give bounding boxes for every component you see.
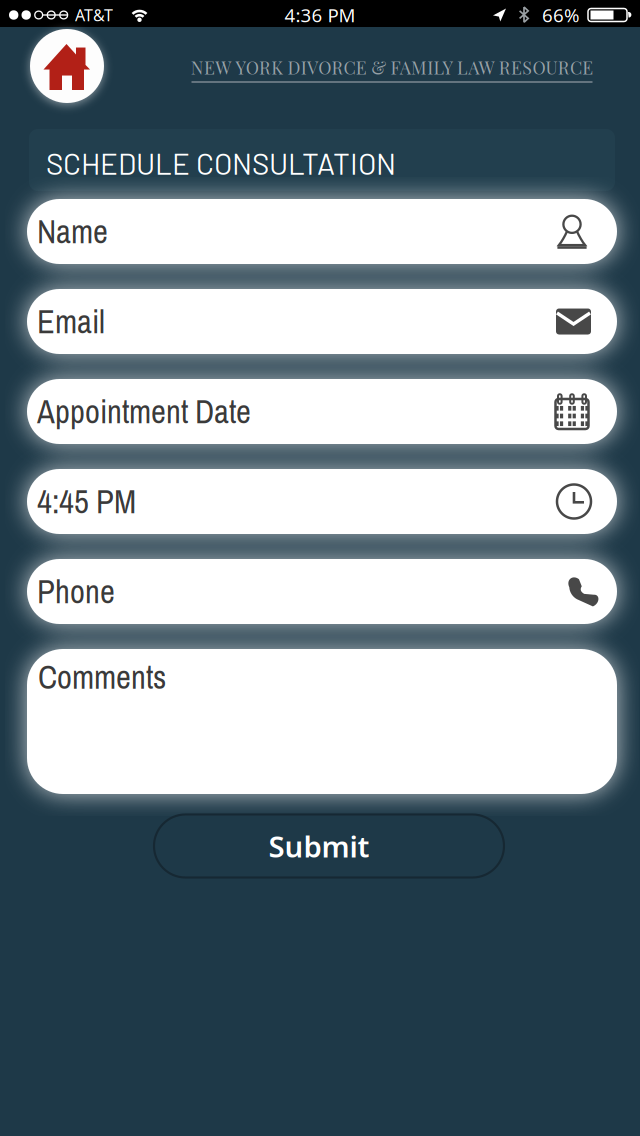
button[interactable]: Submit — [154, 814, 504, 877]
staticText: Appointment Date — [37, 390, 251, 433]
staticText: 4:45 PM — [37, 480, 136, 523]
staticText: Email — [37, 300, 105, 343]
staticText: Phone — [37, 570, 115, 613]
button[interactable]: Comments — [27, 649, 617, 794]
button[interactable]: 4:45 PM — [27, 469, 617, 534]
button[interactable]: Appointment Date — [27, 379, 617, 444]
staticText: AT&T — [75, 4, 113, 26]
staticText: 4:36 PM — [284, 3, 355, 27]
staticText: Comments — [38, 655, 166, 699]
button[interactable]: Phone — [27, 559, 617, 624]
staticText: Name — [37, 210, 108, 253]
button[interactable]: Name — [27, 199, 617, 264]
button[interactable]: Home — [29, 28, 105, 104]
staticText: 66% — [542, 3, 580, 27]
staticText: SCHEDULE CONSULTATION — [46, 145, 396, 181]
staticText: NEW YORK DIVORCE & FAMILY LAW RESOURCE — [191, 55, 593, 79]
button[interactable]: Email — [27, 289, 617, 354]
staticText: Submit — [268, 826, 369, 865]
